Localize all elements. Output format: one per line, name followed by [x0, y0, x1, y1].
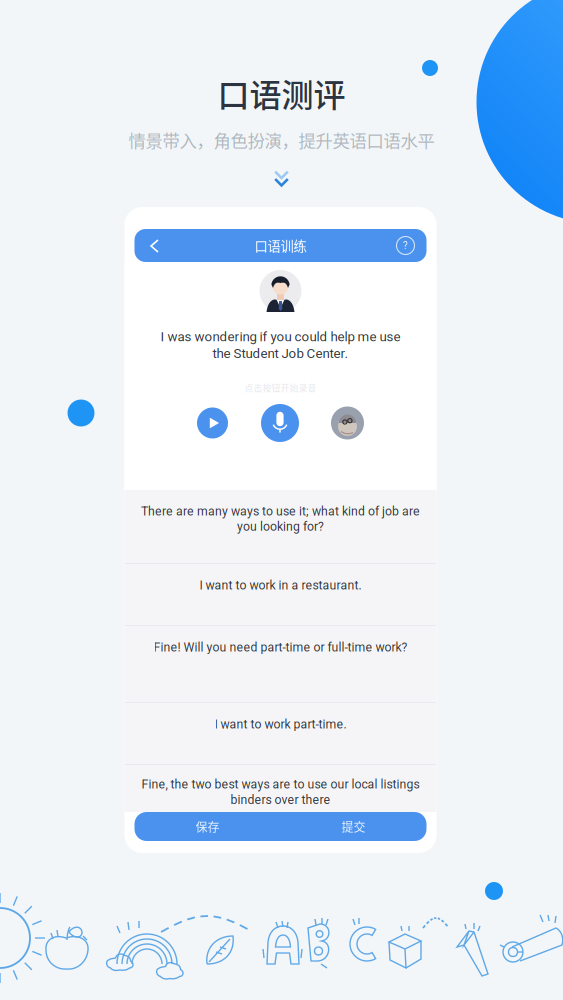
- button[interactable]: Record: [261, 404, 299, 442]
- staticText: ?: [403, 240, 408, 251]
- button[interactable]: Play: [197, 407, 228, 438]
- button[interactable]: Back: [134, 229, 165, 262]
- button[interactable]: 提交: [280, 812, 426, 841]
- staticText: There are many ways to use it; what kind…: [141, 504, 420, 518]
- staticText: the Student Job Center.: [212, 346, 348, 361]
- staticText: I want to work part-time.: [214, 717, 346, 731]
- staticText: I want to work in a restaurant.: [199, 578, 361, 592]
- button[interactable]: 保存: [134, 812, 280, 841]
- staticText: 口语训练: [254, 236, 306, 255]
- staticText: 点击按钮开始录音: [244, 381, 316, 394]
- button[interactable]: Help: [396, 236, 426, 254]
- staticText: 提交: [341, 818, 365, 835]
- staticText: you looking for?: [237, 519, 324, 534]
- staticText: Fine, the two best ways are to use our l…: [141, 777, 419, 791]
- staticText: 情景带入，角色扮演，提升英语口语水平: [128, 127, 434, 152]
- staticText: 保存: [195, 818, 219, 835]
- button[interactable]: Hint: [331, 406, 364, 439]
- staticText: 口语测评: [217, 70, 345, 116]
- staticText: binders over there: [230, 792, 330, 807]
- staticText: I was wondering if you could help me use: [160, 329, 400, 345]
- staticText: Fine! Will you need part-time or full-ti…: [153, 640, 407, 654]
